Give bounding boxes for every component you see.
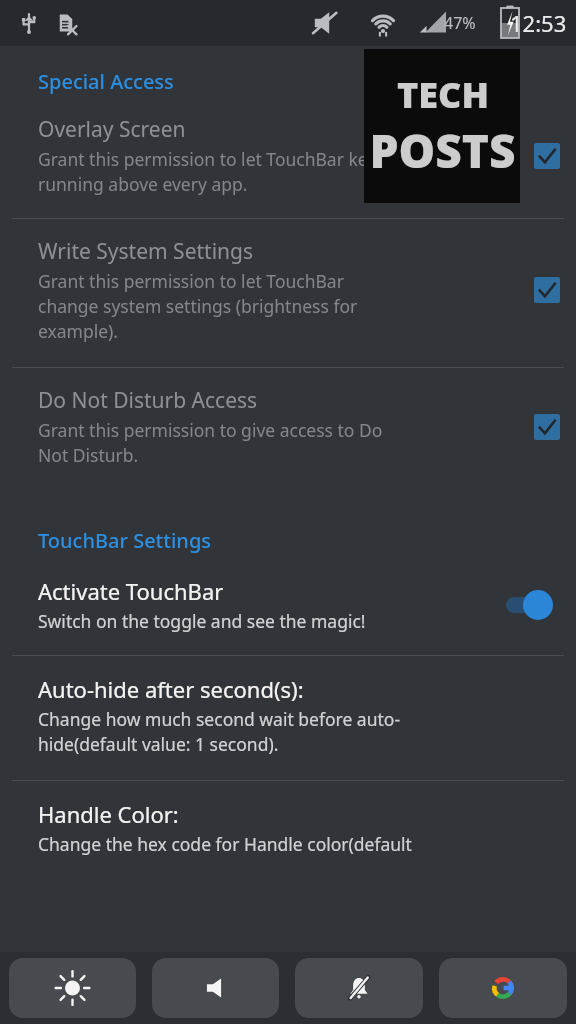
staticText: Change the hex code for Handle color(def…: [38, 832, 412, 856]
button[interactable]: Write System Settings: [0, 219, 576, 367]
button[interactable]: Handle Color:: [0, 781, 576, 880]
staticText: Do Not Disturb Access: [38, 386, 258, 415]
staticText: TouchBar Settings: [38, 527, 211, 554]
staticText: Switch on the toggle and see the magic!: [38, 609, 366, 633]
button[interactable]: Volume: [152, 958, 279, 1018]
staticText: TECH: [397, 70, 489, 119]
staticText: Write System Settings: [38, 237, 254, 266]
staticText: Grant this permission to give access to …: [38, 418, 383, 467]
button[interactable]: Activate TouchBar toggle: [506, 588, 558, 622]
button[interactable]: Google Assistant: [439, 958, 567, 1018]
button[interactable]: Auto-hide after second(s):: [0, 656, 576, 780]
staticText: Special Access: [38, 68, 174, 95]
button[interactable]: Overlay Screen: [0, 101, 576, 218]
button[interactable]: TouchBar Settings: [0, 519, 576, 560]
staticText: Change how much second wait before auto-…: [38, 707, 401, 756]
button[interactable]: Silence notifications: [295, 958, 423, 1018]
staticText: Overlay Screen: [38, 115, 186, 144]
button[interactable]: Permission checkbox: [532, 412, 562, 442]
staticText: Auto-hide after second(s):: [38, 674, 304, 704]
button[interactable]: Permission checkbox: [532, 141, 562, 171]
button[interactable]: Permission checkbox: [532, 275, 562, 305]
staticText: Grant this permission to let TouchBar ch…: [38, 269, 358, 343]
button[interactable]: Activate TouchBar: [0, 560, 576, 655]
button[interactable]: Brightness: [9, 958, 136, 1018]
button[interactable]: Do Not Disturb Access: [0, 368, 576, 497]
staticText: Grant this permission to let TouchBar ke…: [38, 147, 389, 196]
button[interactable]: Special Access: [0, 60, 576, 101]
staticText: 47%: [444, 12, 476, 34]
staticText: POSTS: [369, 119, 516, 182]
staticText: Handle Color:: [38, 799, 179, 829]
staticText: Activate TouchBar: [38, 576, 224, 606]
staticText: 12:53: [510, 8, 567, 38]
